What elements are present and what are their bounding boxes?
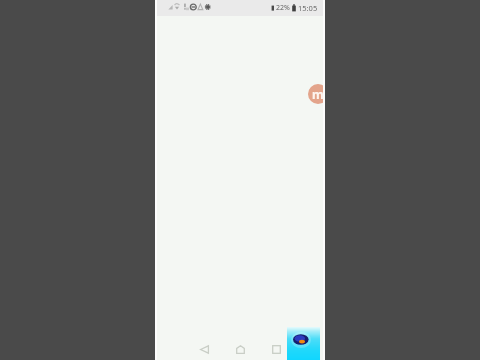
staticText: 15:05	[298, 3, 318, 13]
button[interactable]: Home	[231, 340, 249, 358]
button[interactable]: Floating bubble	[308, 84, 325, 104]
button[interactable]: Open app	[287, 327, 320, 360]
staticText: 22%	[276, 3, 290, 13]
button[interactable]: Recents	[267, 340, 285, 358]
button[interactable]: Back	[195, 340, 213, 358]
staticText: m	[312, 86, 324, 102]
